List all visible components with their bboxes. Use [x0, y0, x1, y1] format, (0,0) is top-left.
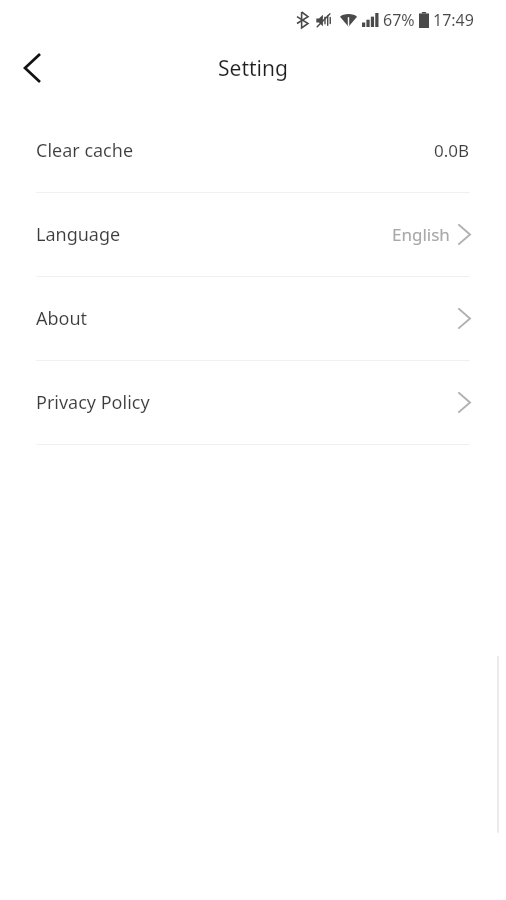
- button[interactable]: Language: [0, 193, 506, 277]
- staticText: Language: [36, 222, 121, 247]
- staticText: 67%: [383, 9, 415, 31]
- button[interactable]: Back: [8, 44, 56, 92]
- staticText: 17:49: [433, 9, 474, 31]
- button[interactable]: Privacy Policy: [0, 361, 506, 445]
- staticText: English: [392, 223, 450, 246]
- staticText: About: [36, 306, 88, 331]
- button[interactable]: About: [0, 277, 506, 361]
- staticText: 0.0B: [434, 139, 470, 162]
- staticText: Privacy Policy: [36, 390, 150, 415]
- staticText: Setting: [218, 54, 288, 83]
- staticText: Clear cache: [36, 138, 134, 163]
- button[interactable]: Clear cache: [0, 109, 506, 193]
